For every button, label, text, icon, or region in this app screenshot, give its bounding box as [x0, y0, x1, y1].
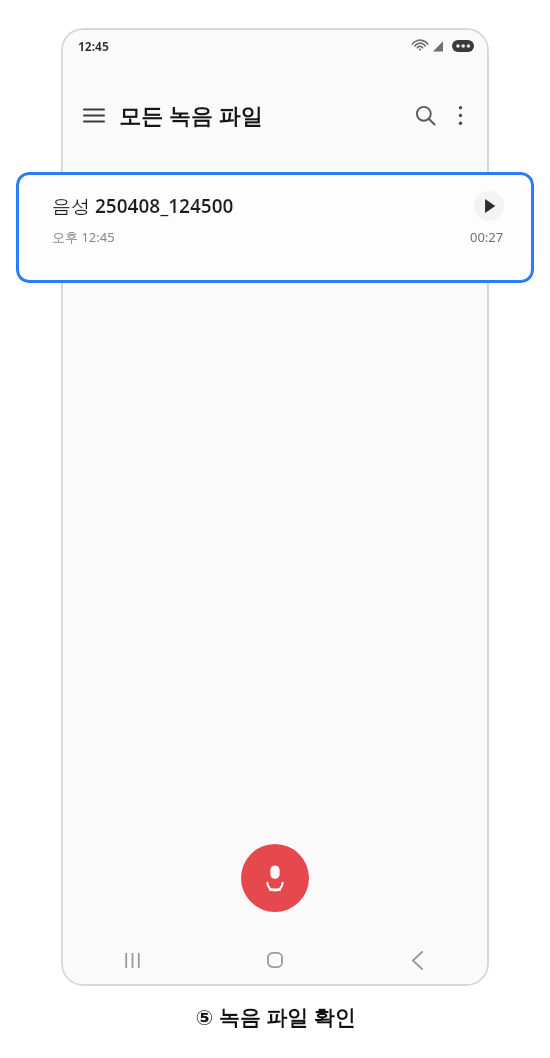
staticText: 오후 12:45: [52, 228, 115, 246]
button[interactable]: Search: [407, 97, 443, 133]
button[interactable]: Recents: [61, 936, 203, 984]
button[interactable]: Menu: [77, 98, 111, 132]
button[interactable]: More options: [443, 98, 477, 132]
button[interactable]: Play: [474, 191, 504, 221]
button[interactable]: 음성 250408_124500: [16, 172, 534, 283]
staticText: ⑤ 녹음 파일 확인: [195, 1003, 356, 1032]
button[interactable]: Back: [346, 936, 489, 984]
staticText: 12:45: [78, 38, 109, 54]
staticText: 00:27: [470, 228, 504, 246]
staticText: 모든 녹음 파일: [119, 100, 263, 130]
button[interactable]: Home: [203, 936, 346, 984]
staticText: 음성 250408_124500: [52, 193, 234, 219]
button[interactable]: Record: [241, 844, 309, 912]
